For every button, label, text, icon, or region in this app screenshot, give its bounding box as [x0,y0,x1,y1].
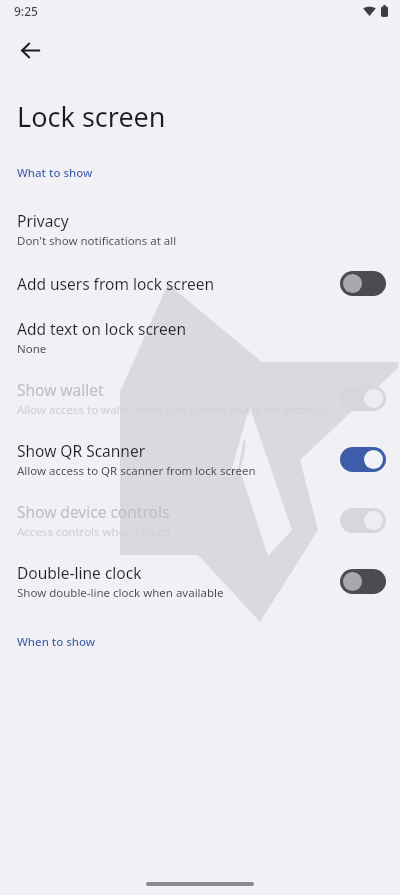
button[interactable]: Add users from lock screen [0,260,400,307]
staticText: Double-line clock [17,562,142,583]
staticText: Show device controls [17,501,170,522]
button[interactable]: Privacy [0,199,400,260]
staticText: Add text on lock screen [17,318,186,339]
button[interactable]: Toggle [340,447,386,472]
staticText: Lock screen [17,98,166,135]
button[interactable]: Back [6,26,54,74]
staticText: Show QR Scanner [17,440,146,461]
staticText: Allow access to QR scanner from lock scr… [17,463,256,479]
button[interactable]: Double-line clock [0,551,400,612]
staticText: Privacy [17,210,69,231]
staticText: What to show [17,165,93,181]
staticText: Add users from lock screen [17,273,215,294]
staticText: When to show [17,634,96,650]
staticText: Show wallet [17,379,104,400]
button[interactable]: Toggle [340,508,386,533]
button[interactable]: Show QR Scanner [0,429,400,490]
button[interactable]: Add text on lock screen [0,307,400,368]
staticText: Show double-line clock when available [17,585,224,601]
staticText: Access controls when locked [17,524,171,540]
staticText: Allow access to wallet from lock screen … [17,402,327,418]
button[interactable]: Show device controls [0,490,400,551]
button[interactable]: Toggle [340,386,386,411]
button[interactable]: Show wallet [0,368,400,429]
staticText: 9:25 [14,3,38,19]
staticText: Don't show notifications at all [17,233,177,249]
button[interactable]: Toggle [340,569,386,594]
button[interactable]: Toggle [340,271,386,296]
staticText: None [17,341,47,357]
